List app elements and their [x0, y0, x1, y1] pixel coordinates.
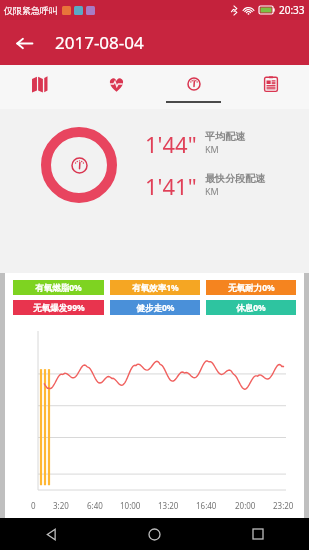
button[interactable]: Map — [0, 65, 78, 109]
staticText: 3:20 — [53, 500, 69, 511]
button[interactable]: 无氧耐力0% — [206, 280, 296, 295]
staticText: 有氧效率1% — [132, 282, 179, 294]
staticText: 0 — [31, 500, 36, 511]
button[interactable]: 无氧爆发99% — [13, 300, 104, 315]
staticText: 仅限紧急呼叫 — [4, 5, 58, 16]
button[interactable]: 休息0% — [206, 300, 296, 315]
button[interactable]: Records — [232, 65, 309, 109]
staticText: 23:20 — [273, 500, 294, 511]
staticText: 2017-08-04 — [55, 31, 144, 54]
staticText: KM — [205, 185, 219, 197]
button[interactable]: 健步走0% — [110, 300, 200, 315]
staticText: 20:00 — [235, 500, 256, 511]
staticText: 平均配速 — [205, 130, 245, 143]
staticText: 13:20 — [158, 500, 179, 511]
staticText: 健步走0% — [136, 302, 175, 314]
button[interactable]: Recent apps — [206, 518, 309, 550]
staticText: 最快分段配速 — [205, 172, 265, 185]
button[interactable]: Home — [103, 518, 206, 550]
button[interactable]: Back — [0, 518, 103, 550]
staticText: 6:40 — [87, 500, 103, 511]
staticText: 20:33 — [279, 3, 305, 17]
staticText: 无氧爆发99% — [33, 302, 85, 314]
staticText: 16:40 — [196, 500, 217, 511]
staticText: 无氧耐力0% — [228, 282, 275, 294]
staticText: 10:00 — [120, 500, 141, 511]
button[interactable]: Back — [6, 25, 42, 61]
button[interactable]: Heart rate — [78, 65, 155, 109]
staticText: 休息0% — [236, 302, 266, 314]
button[interactable]: 有氧效率1% — [110, 280, 200, 295]
staticText: KM — [205, 143, 219, 155]
staticText: 有氧燃脂0% — [35, 282, 82, 294]
staticText: 1'41" — [145, 171, 197, 201]
button[interactable]: 有氧燃脂0% — [13, 280, 104, 295]
staticText: 1'44" — [145, 129, 197, 159]
button[interactable]: Pace — [155, 65, 232, 109]
